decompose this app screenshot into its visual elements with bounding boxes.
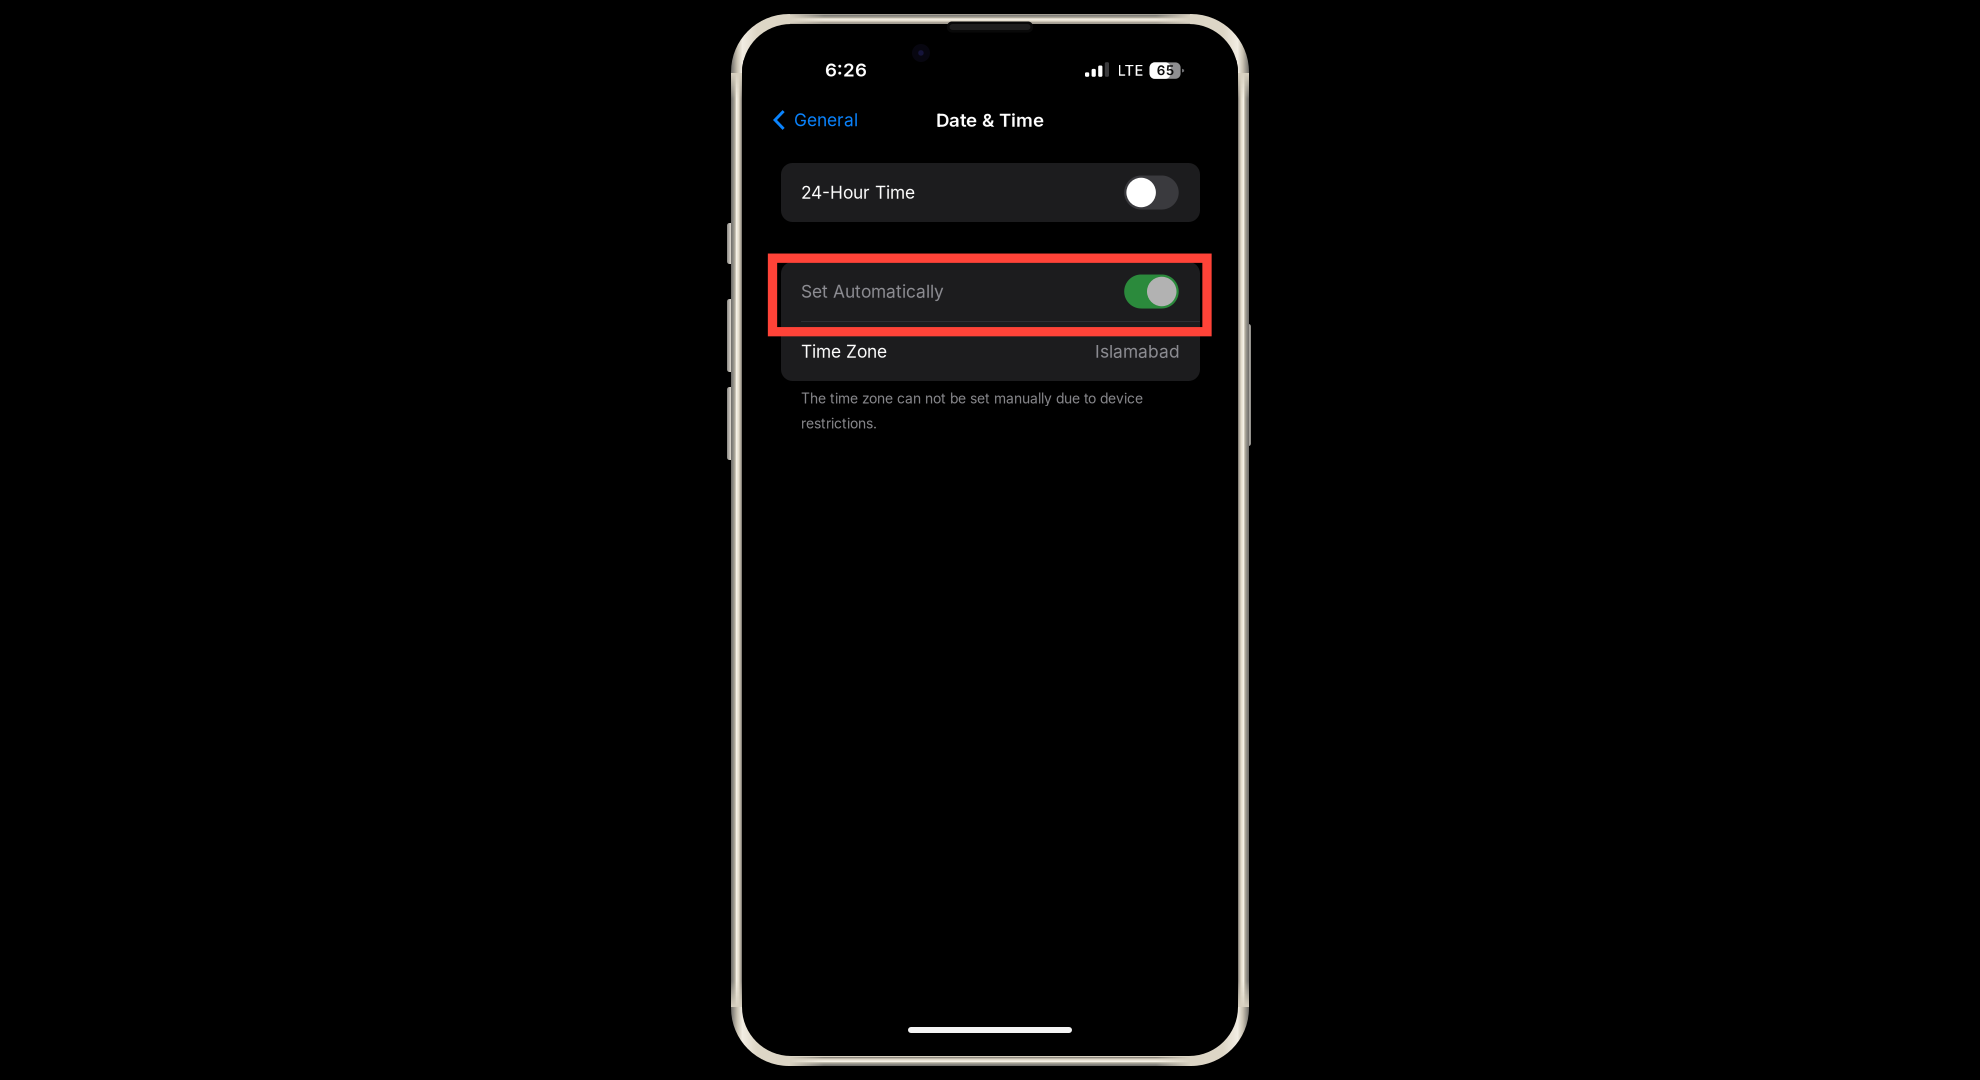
staticText: 65 <box>1157 62 1174 78</box>
staticText: 24-Hour Time <box>801 182 915 203</box>
button[interactable]: 24-Hour Time <box>781 163 1200 222</box>
button[interactable]: Time Zone <box>781 322 1200 381</box>
staticText: LTE <box>1117 62 1143 79</box>
staticText: The time zone can not be set manually du… <box>801 390 1143 407</box>
staticText: Islamabad <box>1095 341 1180 362</box>
staticText: restrictions. <box>801 415 877 432</box>
button[interactable]: Set Automatically <box>781 262 1200 321</box>
staticText: Time Zone <box>801 341 887 362</box>
button[interactable]: General <box>742 98 870 142</box>
staticText: Date & Time <box>936 109 1044 131</box>
staticText: 6:26 <box>825 58 867 81</box>
staticText: General <box>794 109 858 130</box>
staticText: Set Automatically <box>801 281 944 302</box>
